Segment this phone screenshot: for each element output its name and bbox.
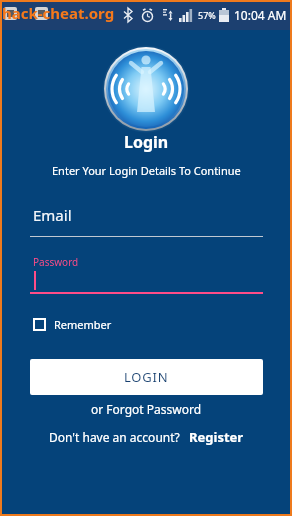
button[interactable]: LOGIN [30,359,263,395]
staticText: Remember [54,317,112,332]
button[interactable]: Remember [30,317,112,332]
staticText: LOGIN [124,368,169,386]
staticText: 57% [198,9,216,21]
staticText: Login [124,131,169,153]
staticText: Register [189,428,244,446]
staticText: hack-cheat.org [2,3,115,23]
staticText: 10:04 AM [234,7,287,23]
button[interactable]: Don't have an account? [49,428,244,446]
staticText: Don't have an account? [49,429,180,445]
staticText: Email [33,205,72,225]
button[interactable]: or Forgot Password [91,401,202,417]
staticText: Enter Your Login Details To Continue [52,163,241,178]
staticText: Password [33,255,79,269]
